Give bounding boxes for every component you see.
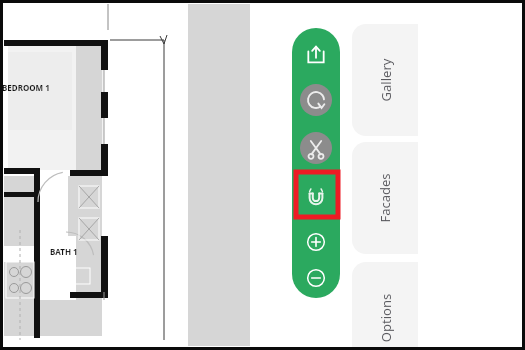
button[interactable]: Zoom in xyxy=(300,226,332,258)
button[interactable]: Rotate xyxy=(300,84,332,116)
button[interactable]: Snap magnet xyxy=(300,180,332,212)
button[interactable]: Facades xyxy=(352,142,418,254)
button[interactable]: Gallery xyxy=(352,24,418,136)
staticText: BEDROOM 1 xyxy=(2,82,50,93)
button[interactable]: Zoom out xyxy=(300,262,332,294)
staticText: Facades xyxy=(376,173,394,223)
button[interactable]: Cut xyxy=(300,132,332,164)
staticText: Options xyxy=(376,293,394,342)
button[interactable]: Options xyxy=(352,262,418,350)
staticText: Gallery xyxy=(376,58,394,101)
button[interactable]: Share xyxy=(300,38,332,70)
staticText: BATH 1 xyxy=(50,246,78,257)
